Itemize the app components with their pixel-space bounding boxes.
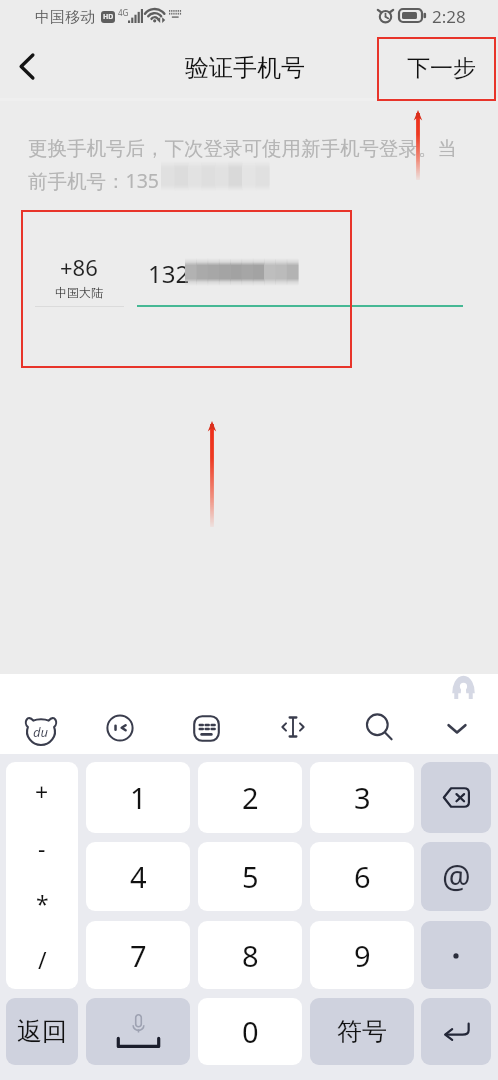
staticText: du xyxy=(33,723,49,741)
button[interactable]: 2 xyxy=(198,762,302,833)
staticText: HD xyxy=(103,12,114,22)
button[interactable]: 3 xyxy=(310,762,414,833)
staticText: @ xyxy=(442,855,471,899)
staticText: - xyxy=(38,832,46,863)
button[interactable]: 5 xyxy=(198,842,302,911)
staticText: / xyxy=(38,944,47,975)
button[interactable]: 4 xyxy=(86,842,190,911)
button[interactable]: Search xyxy=(365,713,393,741)
staticText: 132 xyxy=(148,257,190,290)
button[interactable]: Enter xyxy=(421,998,491,1065)
staticText: 验证手机号 xyxy=(185,53,305,83)
button[interactable]: 9 xyxy=(310,921,414,989)
button[interactable]: 0 xyxy=(198,998,302,1065)
button[interactable]: . xyxy=(421,921,491,989)
button[interactable]: Move cursor xyxy=(279,713,307,741)
staticText: 8 xyxy=(242,936,259,975)
staticText: 符号 xyxy=(337,1016,387,1047)
staticText: 前手机号：135 xyxy=(28,167,159,194)
button[interactable]: 1 xyxy=(86,762,190,833)
staticText: +86 xyxy=(60,252,98,282)
button[interactable]: @ xyxy=(421,842,491,911)
button[interactable]: 8 xyxy=(198,921,302,989)
staticText: 0 xyxy=(242,1012,259,1051)
staticText: 7 xyxy=(130,936,147,975)
button[interactable]: Emoji xyxy=(106,714,134,742)
button[interactable]: Back xyxy=(0,39,54,93)
button[interactable]: 下一步 xyxy=(407,54,476,83)
staticText: 更换手机号后，下次登录可使用新手机号登录。当 xyxy=(28,136,457,161)
staticText: + xyxy=(35,776,49,807)
staticText: 中国大陆 xyxy=(55,285,103,300)
staticText: 中国移动 xyxy=(35,8,95,27)
staticText: 4 xyxy=(130,857,147,896)
staticText: 3 xyxy=(354,778,371,817)
staticText: 6 xyxy=(354,857,371,896)
staticText: * xyxy=(36,888,49,919)
button[interactable]: 符号 xyxy=(310,998,414,1065)
button[interactable]: 6 xyxy=(310,842,414,911)
button[interactable]: Baidu input method xyxy=(25,713,57,745)
button[interactable]: Switch keyboard xyxy=(193,715,220,742)
button[interactable]: 7 xyxy=(86,921,190,989)
staticText: 1 xyxy=(130,778,147,817)
staticText: 5 xyxy=(242,857,259,896)
button[interactable]: 返回 xyxy=(6,998,78,1065)
button[interactable]: Hide keyboard xyxy=(443,714,471,742)
staticText: 返回 xyxy=(17,1016,67,1047)
button[interactable]: operators xyxy=(6,762,78,989)
staticText: 9 xyxy=(354,936,371,975)
staticText: 2:28 xyxy=(432,5,466,28)
button[interactable]: Backspace xyxy=(421,762,491,833)
button[interactable]: Space xyxy=(86,998,190,1065)
staticText: 2 xyxy=(242,778,259,817)
staticText: 4G xyxy=(118,7,129,18)
staticText: 下一步 xyxy=(407,54,476,83)
